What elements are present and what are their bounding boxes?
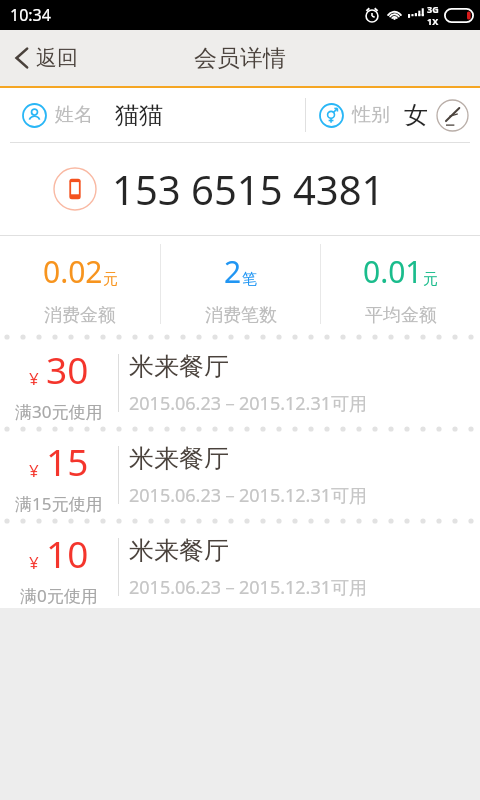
button[interactable]: 姓名 — [0, 100, 305, 130]
button[interactable]: 2 — [161, 241, 320, 327]
staticText: 消费笔数 — [205, 304, 277, 327]
staticText: 消费金额 — [44, 304, 116, 327]
staticText: 元 — [103, 270, 118, 289]
staticText: 返回 — [36, 45, 78, 71]
staticText: 元 — [423, 270, 438, 289]
staticText: 米来餐厅 — [129, 351, 229, 382]
staticText: 满0元使用 — [20, 584, 98, 607]
staticText: 米来餐厅 — [129, 443, 229, 474]
staticText: 1X — [427, 15, 439, 27]
button[interactable]: ¥ — [0, 526, 480, 608]
staticText: 30 — [46, 344, 89, 394]
staticText: 15 — [46, 436, 89, 486]
staticText: 满30元使用 — [15, 400, 103, 423]
staticText: 姓名 — [55, 103, 93, 127]
button[interactable]: 性别 — [306, 100, 436, 130]
staticText: 会员详情 — [194, 44, 286, 73]
button[interactable]: Edit — [436, 99, 469, 132]
staticText: 10 — [46, 528, 89, 578]
button[interactable]: 0.01 — [321, 241, 480, 327]
button[interactable]: 返回 — [0, 37, 92, 79]
staticText: 满15元使用 — [15, 492, 103, 515]
staticText: 3G — [427, 3, 439, 15]
staticText: 性别 — [352, 103, 390, 127]
staticText: 笔 — [242, 270, 257, 289]
staticText: 0.01 — [363, 251, 423, 292]
staticText: 女 — [404, 100, 428, 130]
staticText: ¥ — [29, 551, 39, 574]
staticText: 平均金额 — [365, 304, 437, 327]
staticText: 153 6515 4381 — [112, 162, 385, 216]
staticText: ¥ — [29, 459, 39, 482]
button[interactable]: ¥ — [0, 434, 480, 516]
staticText: 2 — [224, 251, 242, 292]
staticText: 0.02 — [43, 251, 103, 292]
staticText: 2015.06.23－2015.12.31可用 — [129, 483, 368, 508]
staticText: 猫猫 — [115, 100, 163, 130]
button[interactable]: 153 6515 4381 — [0, 143, 480, 235]
button[interactable]: ¥ — [0, 342, 480, 424]
staticText: 2015.06.23－2015.12.31可用 — [129, 391, 368, 416]
staticText: ¥ — [29, 367, 39, 390]
staticText: 米来餐厅 — [129, 535, 229, 566]
staticText: 2015.06.23－2015.12.31可用 — [129, 575, 368, 600]
button[interactable]: 0.02 — [0, 241, 160, 327]
staticText: 10:34 — [10, 4, 51, 26]
